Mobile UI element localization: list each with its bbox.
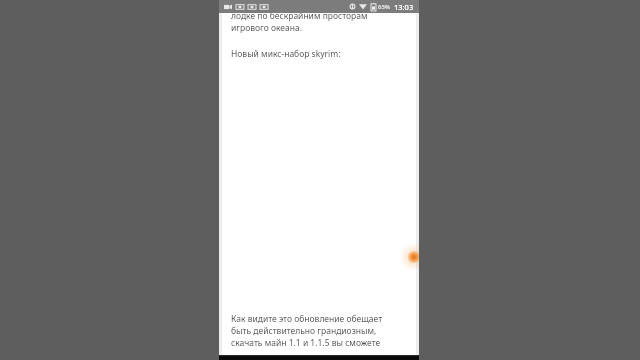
staticText: игрового океана. xyxy=(231,22,302,34)
staticText: 13:03 xyxy=(394,2,414,12)
staticText: Новый микс-набор skyrim: xyxy=(231,48,341,60)
staticText: лодке по бескрайним просторам xyxy=(231,10,368,22)
staticText: Как видите это обновление обещает xyxy=(231,313,383,325)
staticText: скачать майн 1.1 и 1.1.5 вы сможете xyxy=(231,337,381,349)
button[interactable]: Scroll marker xyxy=(400,243,419,271)
staticText: быть действительно грандиозным, xyxy=(231,325,377,337)
staticText: 65% xyxy=(378,3,390,11)
